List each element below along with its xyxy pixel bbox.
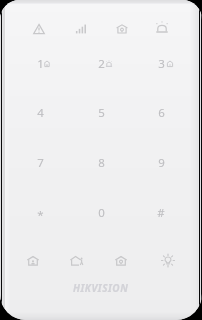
staticText: 2 [98, 56, 105, 72]
button[interactable]: 0 [73, 195, 129, 231]
other: Alarm [102, 57, 116, 71]
button[interactable]: 4 [12, 95, 68, 131]
other: Away arm [163, 57, 177, 71]
staticText: # [157, 205, 165, 221]
staticText: 3 [158, 56, 165, 72]
staticText: 1 [37, 56, 44, 72]
button[interactable]: # [133, 195, 189, 231]
button[interactable]: 9 [133, 145, 189, 181]
button[interactable]: 6 [133, 95, 189, 131]
staticText: 6 [158, 105, 165, 121]
button[interactable]: Armed [109, 16, 135, 42]
staticText: 5 [98, 105, 105, 121]
button[interactable]: Stay arm [20, 248, 46, 274]
button[interactable]: Disarm [108, 248, 134, 274]
button[interactable]: 5 [73, 95, 129, 131]
button[interactable]: 7 [12, 145, 68, 181]
button[interactable]: Alarm [149, 15, 175, 41]
button[interactable]: * [12, 197, 68, 233]
other: Stay arm [40, 57, 54, 71]
staticText: 4 [37, 105, 44, 121]
button[interactable]: Signal strength [68, 16, 94, 42]
staticText: 9 [158, 155, 165, 171]
button[interactable]: Away arm [64, 248, 90, 274]
staticText: 0 [98, 205, 105, 221]
staticText: HIKVISION [73, 281, 129, 295]
staticText: * [37, 207, 44, 223]
button[interactable]: 8 [73, 145, 129, 181]
button[interactable]: 1 [12, 46, 68, 82]
staticText: 8 [98, 155, 105, 171]
button[interactable]: Light [155, 248, 181, 274]
button[interactable]: 3 [133, 46, 189, 82]
button[interactable]: Fault [26, 16, 52, 42]
staticText: 7 [37, 155, 44, 171]
button[interactable]: 2 [73, 46, 129, 82]
